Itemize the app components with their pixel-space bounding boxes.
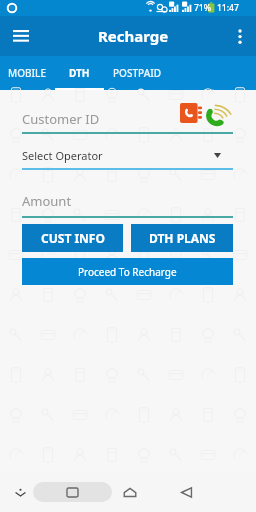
staticText: DTH xyxy=(69,66,90,80)
staticText: Customer ID xyxy=(22,110,100,128)
button[interactable]: MOBILE xyxy=(0,56,55,90)
staticText: 71% xyxy=(194,2,211,14)
staticText: Select Operator xyxy=(22,148,103,163)
button[interactable]: Recent apps xyxy=(33,482,112,502)
button[interactable]: Hide keyboard xyxy=(10,482,30,502)
button[interactable]: DTH xyxy=(55,56,104,90)
staticText: MOBILE xyxy=(8,66,47,80)
button[interactable]: More options xyxy=(224,16,256,56)
staticText: POSTPAID xyxy=(113,66,162,80)
staticText: Amount xyxy=(22,192,72,210)
button[interactable]: Back xyxy=(176,482,197,503)
staticText: Recharge xyxy=(98,26,169,46)
button[interactable]: Proceed To Recharge xyxy=(22,258,233,285)
button[interactable]: DTH PLANS xyxy=(131,224,233,252)
button[interactable]: Home xyxy=(119,482,140,503)
button[interactable]: POSTPAID xyxy=(104,56,170,90)
staticText: CUST INFO xyxy=(41,230,105,246)
button[interactable]: Call xyxy=(205,104,230,126)
button[interactable]: Pick from contacts xyxy=(180,103,202,123)
staticText: 11:47 xyxy=(217,2,239,14)
button[interactable]: CUST INFO xyxy=(22,224,123,252)
staticText: DTH PLANS xyxy=(149,230,216,246)
button[interactable]: Open navigation drawer xyxy=(0,16,42,56)
staticText: Proceed To Recharge xyxy=(78,265,177,279)
